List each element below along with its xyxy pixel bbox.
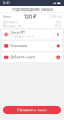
staticText: Oct: [56, 21, 61, 24]
staticText: Подтверждение заказа: [11, 7, 52, 12]
staticText: Доставка: [3, 21, 18, 24]
staticText: 120 ₽: [24, 14, 36, 20]
button[interactable]: Оформить заказ: [3, 106, 61, 114]
staticText: Москва, ул.: [3, 24, 22, 28]
staticText: 2 товара · 320 ₽: [10, 35, 34, 38]
staticText: 5:09 am: [49, 15, 61, 18]
staticText: 9:41: [3, 1, 9, 5]
staticText: Добавить карту: [10, 55, 35, 59]
staticText: Итого: [3, 15, 11, 19]
button[interactable]: Заказ №1: [2, 30, 62, 39]
staticText: Заказ №1: [10, 31, 24, 34]
staticText: Оформить заказ: [17, 108, 47, 112]
button[interactable]: Курьером: [2, 41, 62, 51]
staticText: 01 d: [55, 24, 61, 28]
staticText: Курьером: [10, 44, 26, 48]
button[interactable]: Добавить карту: [2, 52, 62, 62]
